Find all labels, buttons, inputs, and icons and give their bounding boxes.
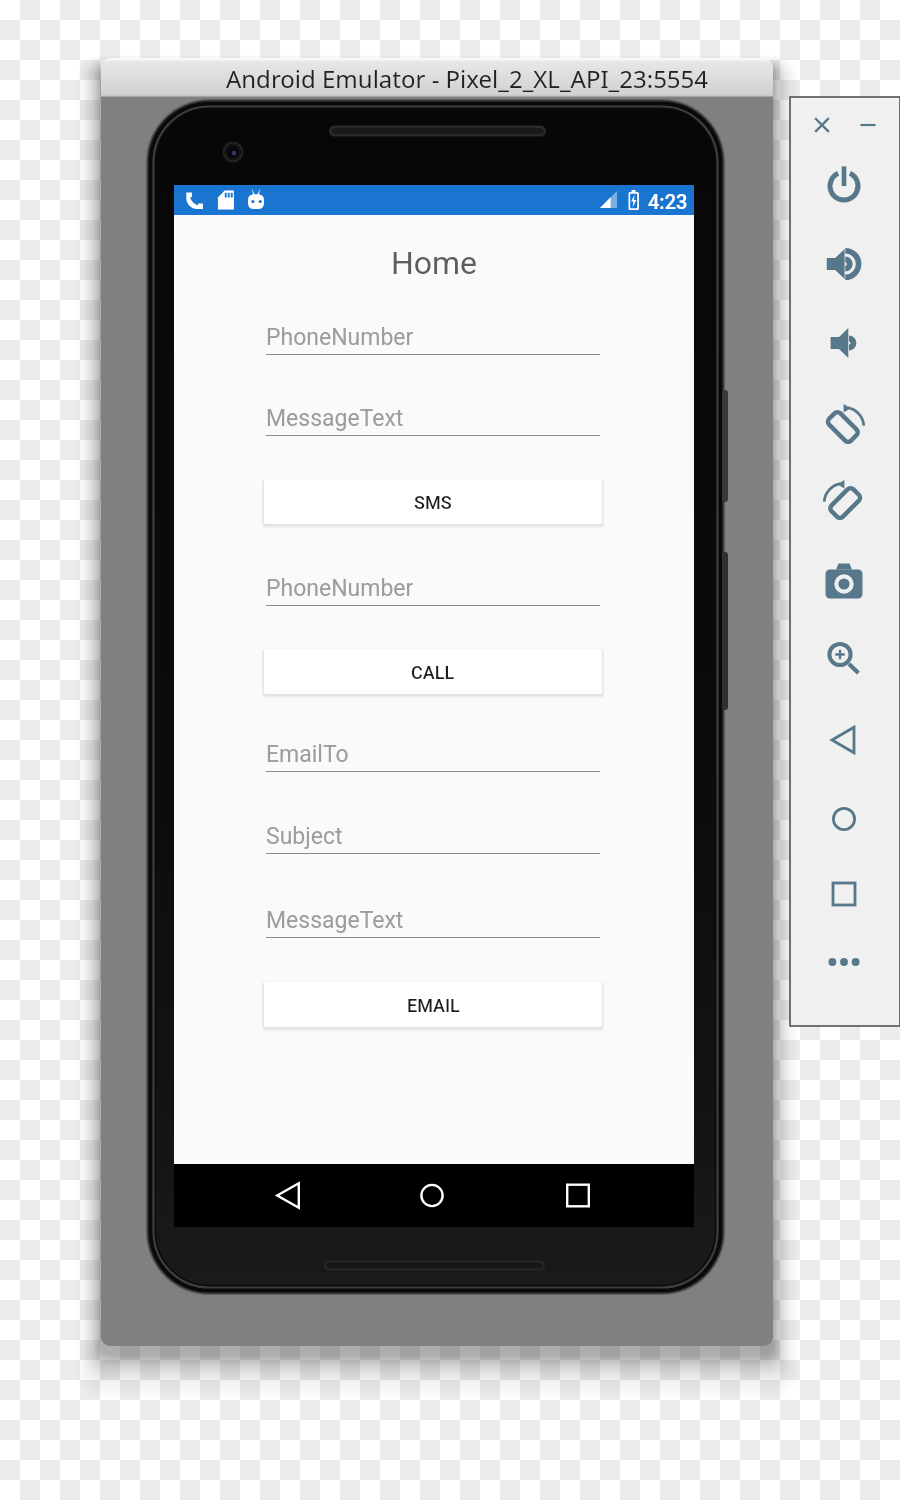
button[interactable]: Back xyxy=(262,1164,314,1227)
staticText: 4:23 xyxy=(648,190,688,213)
button[interactable]: Recents xyxy=(552,1164,604,1227)
button[interactable]: MessageText xyxy=(266,907,600,938)
staticText: Android Emulator - Pixel_2_XL_API_23:555… xyxy=(136,62,798,95)
button[interactable]: Home xyxy=(406,1164,458,1227)
staticText: MessageText xyxy=(266,405,404,432)
button[interactable]: Volume up xyxy=(821,241,867,287)
staticText: PhoneNumber xyxy=(266,324,414,351)
button[interactable]: Rotate left xyxy=(818,401,870,453)
button[interactable]: Volume down xyxy=(821,320,867,366)
button[interactable]: Power xyxy=(821,163,867,209)
button[interactable]: MessageText xyxy=(266,405,600,436)
button[interactable]: Zoom in xyxy=(821,634,867,680)
button[interactable]: SMS xyxy=(264,479,602,524)
button[interactable]: Take screenshot xyxy=(821,551,867,597)
staticText: EMAIL xyxy=(407,995,460,1016)
button[interactable]: More options xyxy=(827,945,861,979)
button[interactable]: Back xyxy=(824,720,864,760)
button[interactable]: Close xyxy=(805,108,839,142)
button[interactable]: Rotate right xyxy=(818,477,870,529)
button[interactable]: PhoneNumber xyxy=(266,575,600,606)
button[interactable]: Minimize xyxy=(851,108,885,142)
button[interactable]: CALL xyxy=(264,649,602,694)
staticText: Home xyxy=(174,244,694,282)
button[interactable]: EmailTo xyxy=(266,741,600,772)
staticText: MessageText xyxy=(266,907,404,934)
staticText: EmailTo xyxy=(266,741,349,768)
button[interactable]: EMAIL xyxy=(264,982,602,1027)
button[interactable]: Home xyxy=(824,799,864,839)
staticText: PhoneNumber xyxy=(266,575,414,602)
staticText: CALL xyxy=(411,662,455,683)
staticText: Subject xyxy=(266,823,343,850)
button[interactable]: PhoneNumber xyxy=(266,324,600,355)
button[interactable]: Subject xyxy=(266,823,600,854)
staticText: SMS xyxy=(414,492,452,513)
button[interactable]: Overview xyxy=(824,874,864,914)
